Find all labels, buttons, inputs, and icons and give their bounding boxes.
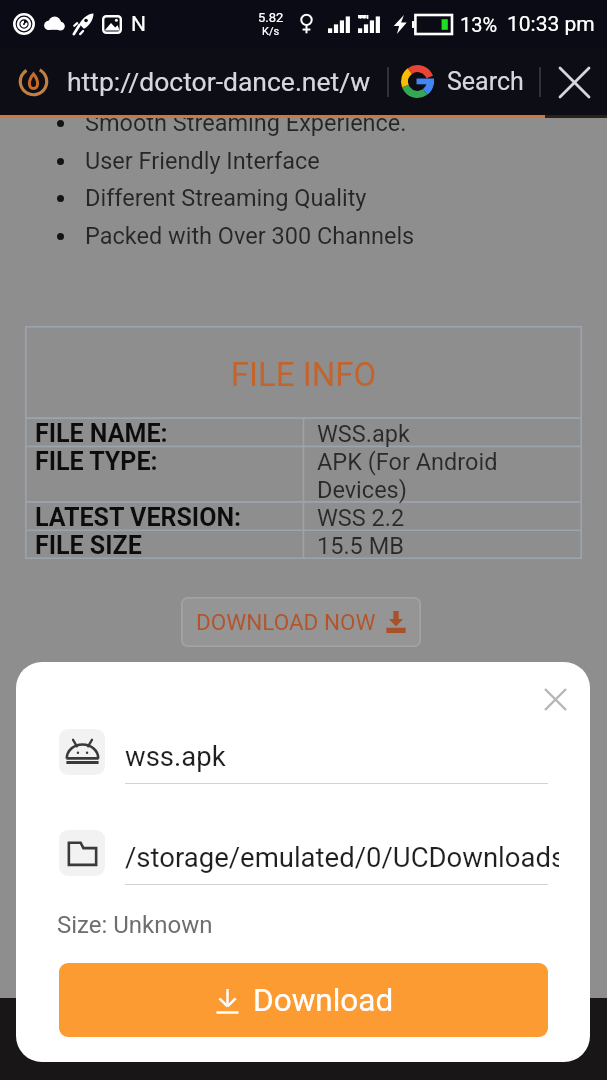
staticText: User Friendly Interface	[85, 147, 320, 175]
staticText: Packed with Over 300 Channels	[85, 222, 415, 250]
staticText: 15.5 MB	[317, 532, 404, 560]
staticText: APK (For Android Devices)	[317, 448, 498, 504]
staticText: WSS.apk	[317, 420, 410, 448]
staticText: 5.82	[258, 10, 284, 25]
staticText: Search	[447, 67, 524, 96]
staticText: Download	[253, 982, 394, 1019]
staticText: FILE SIZE	[35, 531, 142, 560]
staticText: FILE TYPE:	[35, 447, 158, 476]
staticText: http://doctor-dance.net/w	[67, 66, 371, 97]
button[interactable]: Close tab	[551, 59, 597, 105]
button[interactable]: Browser menu	[14, 48, 52, 115]
button[interactable]: DOWNLOAD NOW	[181, 597, 421, 647]
staticText: WSS 2.2	[317, 504, 405, 532]
staticText: /storage/emulated/0/UCDownloads	[125, 841, 559, 873]
button[interactable]: Search	[401, 48, 537, 115]
staticText: wss.apk	[125, 740, 226, 772]
staticText: Different Streaming Quality	[85, 184, 367, 212]
button[interactable]: Close	[532, 676, 578, 722]
staticText: Size: Unknown	[57, 911, 213, 939]
button[interactable]: Download	[59, 963, 548, 1037]
staticText: 13%	[460, 13, 498, 36]
staticText: K/s	[262, 25, 280, 38]
staticText: LATEST VERSION:	[35, 503, 242, 532]
staticText: 10:33 pm	[507, 12, 595, 37]
staticText: FILE NAME:	[35, 419, 168, 448]
staticText: N	[131, 12, 146, 37]
staticText: FILE INFO	[25, 355, 582, 394]
staticText: DOWNLOAD NOW	[196, 609, 376, 635]
staticText: Smooth Streaming Experience.	[85, 109, 407, 137]
